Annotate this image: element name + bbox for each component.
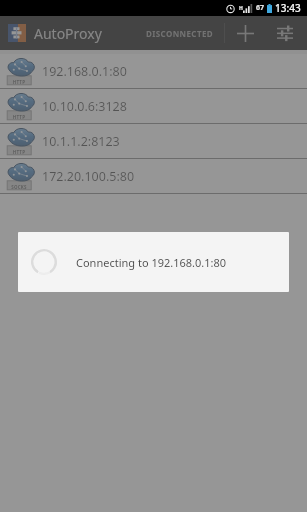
button[interactable]: DISCONNECTED — [140, 20, 220, 47]
staticText: 13:43 — [275, 1, 301, 15]
button[interactable]: Connecting to 192.168.0.1:80 — [18, 232, 289, 292]
staticText: HTTP — [7, 79, 31, 85]
staticText: DISCONNECTED — [146, 28, 214, 39]
staticText: HTTP — [7, 114, 31, 120]
staticText: 10.1.1.2:8123 — [42, 133, 120, 150]
button[interactable]: Settings — [265, 16, 305, 50]
staticText: 172.20.100.5:80 — [42, 168, 135, 185]
staticText: Connecting to 192.168.0.1:80 — [76, 255, 227, 270]
staticText: 67 — [256, 3, 265, 13]
staticText: 192.168.0.1:80 — [42, 63, 127, 80]
staticText: 10.10.0.6:3128 — [42, 98, 127, 115]
button[interactable]: HTTP — [0, 54, 307, 88]
staticText: SOCKS — [7, 184, 31, 190]
button[interactable]: HTTP — [0, 89, 307, 123]
staticText: AutoProxy — [34, 24, 102, 43]
staticText: HTTP — [7, 149, 31, 155]
button[interactable]: Add proxy — [225, 16, 265, 50]
button[interactable]: SOCKS — [0, 159, 307, 193]
button[interactable]: HTTP — [0, 124, 307, 158]
staticText: H — [239, 5, 243, 12]
